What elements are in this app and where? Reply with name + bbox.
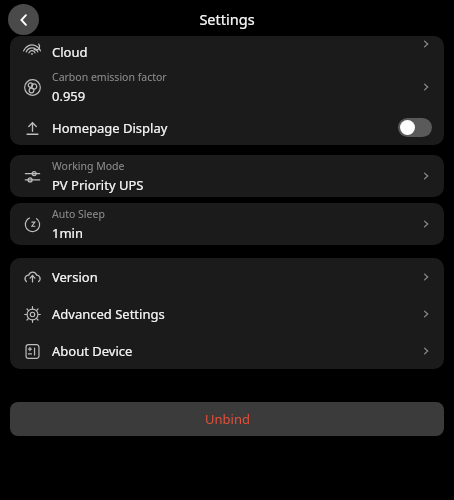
button[interactable]: Homepage Display toggle: [398, 118, 432, 137]
button[interactable]: About Device: [10, 332, 444, 369]
button[interactable]: Auto Sleep: [10, 203, 444, 245]
staticText: Homepage Display: [52, 119, 168, 137]
staticText: Working Mode: [52, 159, 125, 173]
staticText: Cloud: [52, 43, 88, 61]
button[interactable]: Working Mode: [10, 155, 444, 197]
staticText: About Device: [52, 342, 133, 360]
staticText: 0.959: [52, 87, 86, 105]
button[interactable]: Homepage Display: [10, 110, 444, 145]
staticText: Carbon emission factor: [52, 70, 167, 84]
button[interactable]: Back: [8, 4, 39, 35]
staticText: Advanced Settings: [52, 305, 165, 323]
button[interactable]: Unbind: [10, 402, 444, 436]
button[interactable]: Carbon emission factor: [10, 64, 444, 110]
staticText: Auto Sleep: [52, 207, 105, 221]
button[interactable]: Cloud: [10, 36, 444, 64]
staticText: Version: [52, 268, 98, 286]
button[interactable]: Version: [10, 258, 444, 295]
staticText: 1min: [52, 224, 83, 242]
staticText: Unbind: [205, 410, 250, 428]
button[interactable]: Advanced Settings: [10, 295, 444, 332]
staticText: PV Priority UPS: [52, 176, 144, 194]
staticText: Settings: [199, 9, 255, 29]
